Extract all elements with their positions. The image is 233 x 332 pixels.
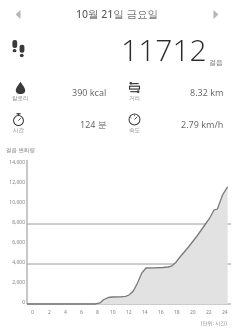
staticText: 14,000: [9, 159, 25, 166]
staticText: 칼로리: [12, 95, 29, 102]
staticText: 6: [80, 309, 83, 316]
button[interactable]: 11712: [0, 27, 233, 71]
button[interactable]: 이전 날짜: [8, 4, 28, 24]
staticText: 10: [110, 309, 116, 316]
staticText: 10,000: [9, 199, 25, 206]
staticText: 8.32 km: [190, 86, 224, 98]
staticText: 2: [48, 309, 51, 316]
staticText: 4,000: [12, 259, 25, 266]
other: 시간: [12, 113, 25, 126]
staticText: 2.79 km/h: [181, 118, 224, 130]
staticText: 22: [206, 309, 212, 316]
staticText: 걸음: [209, 58, 223, 67]
other: 칼로리: [14, 81, 27, 94]
staticText: 10월 21일 금요일: [76, 7, 158, 21]
other: 속도: [128, 113, 141, 126]
staticText: 속도: [129, 127, 140, 134]
staticText: 0: [31, 309, 34, 316]
other: 거리: [128, 81, 141, 94]
staticText: 8: [96, 309, 99, 316]
button[interactable]: 칼로리: [0, 81, 116, 102]
staticText: 0: [22, 299, 25, 306]
staticText: 20: [190, 309, 196, 316]
staticText: 390 kcal: [72, 86, 107, 98]
staticText: 2,000: [12, 279, 25, 286]
staticText: 4: [64, 309, 67, 316]
staticText: 124 분: [80, 118, 107, 130]
staticText: 14: [142, 309, 148, 316]
button[interactable]: 시간: [0, 113, 116, 134]
button[interactable]: 거리: [116, 81, 233, 102]
staticText: 시간: [13, 127, 24, 134]
staticText: 8,000: [12, 219, 25, 226]
staticText: 12: [126, 309, 132, 316]
staticText: 16: [158, 309, 164, 316]
button[interactable]: 속도: [116, 113, 233, 134]
staticText: 11712: [121, 29, 207, 70]
staticText: 12,000: [9, 179, 25, 186]
staticText: 6,000: [12, 239, 25, 246]
staticText: 거리: [129, 95, 140, 102]
staticText: 24: [222, 309, 228, 316]
staticText: (단위: 시간): [201, 320, 227, 327]
staticText: 18: [174, 309, 180, 316]
staticText: 걸음 변화량: [6, 146, 35, 154]
button[interactable]: 다음 날짜: [205, 4, 225, 24]
